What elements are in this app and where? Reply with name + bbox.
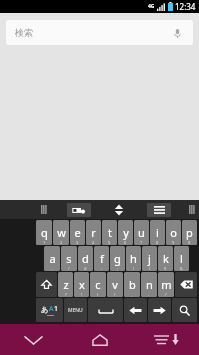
button[interactable]: q bbox=[36, 220, 52, 245]
staticText: b bbox=[129, 277, 136, 292]
staticText: . bbox=[148, 292, 150, 297]
button[interactable]: e bbox=[70, 220, 85, 245]
staticText: d bbox=[82, 251, 89, 266]
button[interactable]: Left bbox=[124, 298, 147, 322]
staticText: y bbox=[123, 225, 129, 240]
button[interactable]: n bbox=[141, 272, 157, 297]
button[interactable]: i bbox=[150, 220, 165, 245]
staticText: 9 bbox=[172, 240, 175, 245]
staticText: x bbox=[79, 277, 85, 292]
staticText: o bbox=[170, 225, 177, 240]
button[interactable]: Search bbox=[172, 298, 197, 322]
button[interactable]: m bbox=[158, 272, 174, 297]
staticText: ) bbox=[114, 292, 116, 297]
staticText: 2 bbox=[60, 240, 63, 245]
button[interactable]: 検索 bbox=[6, 20, 193, 45]
staticText: p bbox=[186, 225, 193, 240]
staticText: l bbox=[180, 251, 183, 266]
button[interactable]: o bbox=[166, 220, 181, 245]
staticText: 0 bbox=[188, 240, 191, 245]
button[interactable]: Recent apps bbox=[133, 324, 199, 355]
staticText: 8 bbox=[156, 240, 159, 245]
staticText: m bbox=[161, 277, 172, 292]
button[interactable]: y bbox=[118, 220, 133, 245]
staticText: 1 bbox=[43, 240, 46, 245]
button[interactable]: Back bbox=[0, 324, 67, 355]
button[interactable]: w bbox=[53, 220, 69, 245]
staticText: MENU bbox=[68, 307, 83, 314]
staticText: 3 bbox=[76, 240, 79, 245]
staticText: z bbox=[63, 277, 69, 292]
button[interactable]: p bbox=[182, 220, 197, 245]
staticText: 検索 bbox=[15, 27, 33, 38]
staticText: 7 bbox=[140, 240, 143, 245]
staticText: A bbox=[49, 304, 54, 314]
button[interactable]: Backspace bbox=[175, 272, 197, 297]
button[interactable]: r bbox=[86, 220, 101, 245]
button[interactable]: l bbox=[174, 246, 189, 271]
button[interactable]: c bbox=[90, 272, 106, 297]
button[interactable]: d bbox=[78, 246, 93, 271]
button[interactable]: Right bbox=[148, 298, 171, 322]
staticText: ( bbox=[133, 266, 135, 271]
staticText: ) bbox=[149, 266, 151, 271]
staticText: 4G bbox=[148, 3, 155, 10]
staticText: 6 bbox=[124, 240, 127, 245]
button[interactable]: Input mode bbox=[36, 298, 63, 322]
button[interactable]: camera bbox=[67, 203, 91, 217]
staticText: ; bbox=[117, 266, 119, 271]
staticText: ( bbox=[97, 292, 99, 297]
staticText: e bbox=[74, 225, 81, 240]
staticText: g bbox=[114, 251, 121, 266]
staticText: a bbox=[49, 251, 56, 266]
staticText: q bbox=[41, 225, 48, 240]
button[interactable]: h bbox=[126, 246, 141, 271]
staticText: ? bbox=[65, 292, 67, 297]
staticText: 4 bbox=[92, 240, 95, 245]
button[interactable]: Voice search bbox=[170, 26, 184, 40]
button[interactable]: Resize keyboard bbox=[109, 203, 129, 217]
staticText: ! bbox=[81, 292, 83, 297]
staticText: / bbox=[68, 266, 70, 271]
staticText: s bbox=[66, 251, 72, 266]
button[interactable]: v bbox=[107, 272, 123, 297]
staticText: , bbox=[131, 292, 133, 297]
staticText: : bbox=[101, 266, 103, 271]
button[interactable]: k bbox=[158, 246, 173, 271]
staticText: / bbox=[165, 292, 167, 297]
staticText: r bbox=[91, 225, 96, 240]
button[interactable]: f bbox=[94, 246, 109, 271]
staticText: c bbox=[95, 277, 101, 292]
staticText: n bbox=[146, 277, 153, 292]
staticText: t bbox=[108, 225, 112, 240]
staticText: 1 bbox=[54, 304, 59, 314]
button[interactable]: Space bbox=[88, 298, 123, 322]
staticText: & bbox=[180, 266, 183, 271]
staticText: u bbox=[138, 225, 145, 240]
button[interactable]: menu bbox=[147, 203, 171, 217]
button[interactable]: x bbox=[74, 272, 89, 297]
button[interactable]: Shift bbox=[36, 272, 57, 297]
button[interactable]: Home bbox=[67, 324, 133, 355]
staticText: i bbox=[156, 225, 159, 240]
button[interactable]: s bbox=[61, 246, 77, 271]
button[interactable]: u bbox=[134, 220, 149, 245]
staticText: w bbox=[57, 225, 66, 240]
button[interactable]: z bbox=[58, 272, 73, 297]
staticText: 5 bbox=[108, 240, 111, 245]
staticText: f bbox=[100, 251, 104, 266]
staticText: j bbox=[148, 251, 151, 266]
staticText: ¥ bbox=[164, 266, 167, 271]
button[interactable]: Menu bbox=[64, 298, 87, 322]
staticText: - bbox=[51, 266, 53, 271]
button[interactable]: t bbox=[102, 220, 117, 245]
button[interactable]: j bbox=[142, 246, 157, 271]
button[interactable]: b bbox=[124, 272, 140, 297]
staticText: k bbox=[163, 251, 169, 266]
staticText: あ bbox=[41, 305, 49, 314]
button[interactable]: a bbox=[44, 246, 60, 271]
button[interactable]: g bbox=[110, 246, 125, 271]
staticText: 12:34 bbox=[175, 1, 196, 12]
staticText: v bbox=[112, 277, 118, 292]
staticText: # bbox=[84, 266, 87, 271]
